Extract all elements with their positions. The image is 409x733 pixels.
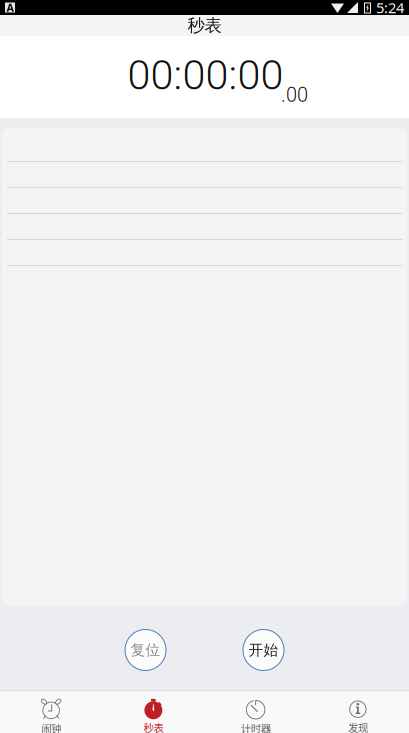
staticText: 5:24 [376, 0, 404, 17]
staticText: 闹钟 [41, 720, 61, 733]
button[interactable]: 发现 [307, 692, 409, 733]
button[interactable]: 秒表 [102, 692, 204, 733]
button[interactable]: 开始 [243, 629, 284, 670]
button[interactable]: 计时器 [204, 691, 307, 733]
staticText: .00 [281, 83, 308, 107]
staticText: 复位 [130, 641, 160, 659]
button[interactable]: 复位 [125, 629, 166, 670]
staticText: 计时器 [241, 720, 271, 733]
button[interactable]: 闹钟 [0, 691, 102, 733]
staticText: 秒表 [143, 720, 163, 733]
staticText: 发现 [348, 720, 368, 733]
staticText: 00:00:00 [127, 51, 283, 99]
staticText: A [6, 0, 13, 15]
staticText: 开始 [248, 641, 278, 659]
staticText: 秒表 [187, 15, 221, 36]
